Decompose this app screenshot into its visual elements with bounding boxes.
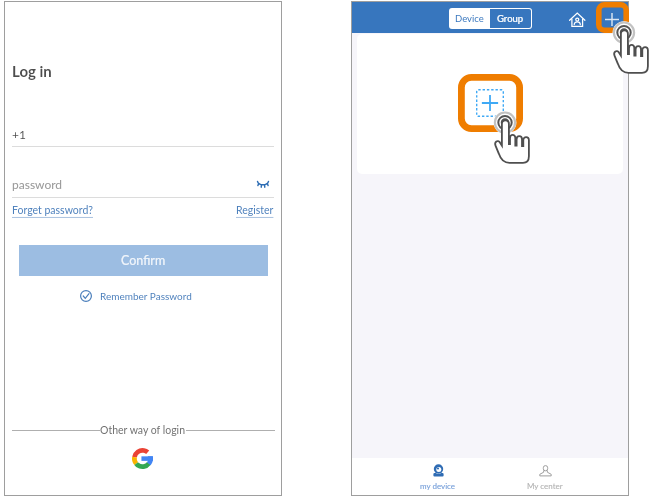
button[interactable]: My center [510,460,580,495]
button[interactable]: Remember Password [80,286,192,306]
staticText: My center [527,481,563,491]
staticText: Other way of login [100,424,186,437]
button[interactable]: Sign in with Google [132,448,153,469]
button[interactable]: Home [564,6,591,33]
button[interactable]: Confirm [19,245,268,276]
button[interactable]: Register [236,204,274,217]
staticText: my device [420,481,456,491]
button[interactable]: Group [490,9,531,28]
button[interactable]: Show password [249,173,277,195]
button[interactable]: Device [449,8,489,29]
staticText: Remember Password [100,290,192,302]
staticText: Group [497,13,524,24]
button[interactable]: Forget password? [12,204,93,217]
staticText: password [12,177,63,191]
button[interactable]: Add device [599,6,624,33]
staticText: Confirm [121,253,166,268]
staticText: Device [455,13,484,24]
button[interactable]: my device [403,460,473,495]
button[interactable]: Add device [476,89,504,117]
staticText: Log in [12,62,52,80]
staticText: +1 [12,127,26,141]
